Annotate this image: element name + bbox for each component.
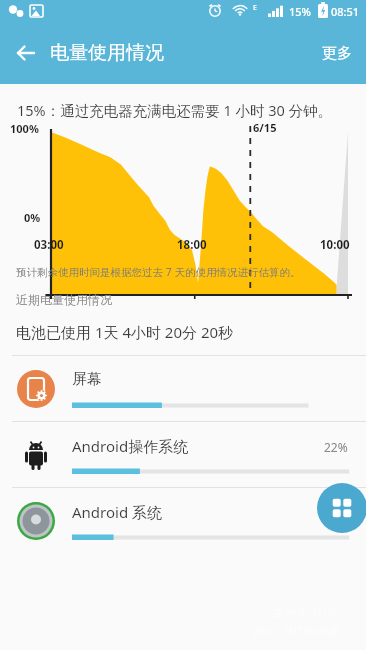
staticText: 近期电量使用情况 bbox=[16, 292, 112, 307]
button[interactable]: Apps bbox=[317, 483, 366, 533]
staticText: 22% bbox=[324, 439, 348, 455]
staticText: 10:00 bbox=[320, 237, 350, 253]
button[interactable]: 屏幕 bbox=[0, 356, 366, 421]
button[interactable]: Android 系统 bbox=[0, 488, 366, 553]
staticText: 13% bbox=[324, 505, 348, 521]
staticText: 08:51 bbox=[331, 4, 360, 19]
staticText: 100% bbox=[10, 121, 39, 136]
staticText: 15% bbox=[289, 4, 311, 19]
staticText: E bbox=[253, 3, 257, 13]
staticText: 03:00 bbox=[34, 237, 64, 253]
staticText: 预计剩余使用时间是根据您过去 7 天的使用情况进行估算的。 bbox=[16, 265, 301, 279]
staticText: 电池已使用 1天 4小时 20分 20秒 bbox=[16, 322, 234, 342]
staticText: 15%：通过充电器充满电还需要 1 小时 30 分钟。 bbox=[17, 100, 333, 120]
staticText: 6/15 bbox=[253, 120, 277, 135]
staticText: 电量使用情况 bbox=[50, 41, 164, 65]
button[interactable]: Android操作系统 bbox=[0, 422, 366, 487]
staticText: 更多 bbox=[322, 44, 352, 63]
staticText: Android 系统 bbox=[72, 502, 163, 522]
staticText: 0% bbox=[24, 210, 41, 225]
button[interactable]: 电池已使用 1天 4小时 20分 20秒 bbox=[0, 309, 366, 355]
staticText: 屏幕 bbox=[72, 370, 102, 389]
staticText: Android操作系统 bbox=[72, 436, 189, 456]
button[interactable]: 更多 bbox=[308, 34, 366, 73]
button[interactable]: Back bbox=[6, 33, 46, 73]
staticText: 18:00 bbox=[177, 237, 207, 253]
